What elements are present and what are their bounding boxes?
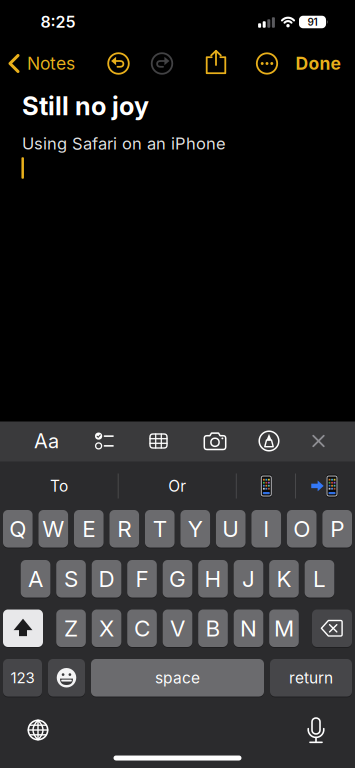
button[interactable]: Dictation bbox=[307, 717, 324, 744]
staticText: Or bbox=[168, 477, 186, 495]
button[interactable]: Q bbox=[3, 510, 33, 548]
button[interactable]: Checklist bbox=[95, 432, 113, 449]
staticText: 8:25 bbox=[40, 12, 75, 32]
button[interactable]: U bbox=[216, 510, 245, 548]
button[interactable]: B bbox=[198, 609, 228, 648]
button[interactable]: Dismiss bbox=[312, 435, 325, 447]
button[interactable]: Markup bbox=[258, 430, 279, 451]
button[interactable]: P bbox=[322, 510, 352, 548]
button[interactable]: space bbox=[91, 659, 264, 697]
staticText: T bbox=[153, 515, 167, 542]
staticText: L bbox=[313, 565, 326, 592]
staticText: Notes bbox=[27, 53, 75, 74]
button[interactable]: W bbox=[38, 510, 68, 548]
staticText: B bbox=[205, 615, 220, 642]
staticText: K bbox=[276, 565, 291, 592]
staticText: Aa bbox=[34, 429, 59, 453]
button[interactable]: Redo bbox=[151, 52, 173, 74]
button[interactable]: Undo bbox=[107, 52, 129, 74]
button[interactable]: Share bbox=[205, 50, 226, 74]
button[interactable]: 123 bbox=[3, 659, 42, 697]
button[interactable]: S bbox=[56, 560, 86, 598]
staticText: U bbox=[222, 515, 239, 542]
staticText: G bbox=[169, 565, 186, 592]
staticText: 123 bbox=[10, 669, 34, 687]
button[interactable]: V bbox=[163, 609, 192, 648]
button[interactable]: Back bbox=[8, 48, 75, 78]
staticText: P bbox=[330, 515, 344, 542]
staticText: O bbox=[293, 515, 310, 542]
button[interactable]: M bbox=[269, 609, 299, 648]
button[interactable]: I bbox=[251, 510, 281, 548]
staticText: M bbox=[274, 615, 294, 642]
staticText: V bbox=[170, 615, 185, 642]
button[interactable]: Insert screenshot bbox=[261, 474, 272, 497]
staticText: W bbox=[42, 515, 64, 542]
staticText: X bbox=[99, 615, 114, 642]
staticText: Done bbox=[295, 53, 340, 74]
button[interactable]: Format bbox=[34, 429, 59, 453]
staticText: R bbox=[117, 515, 131, 542]
button[interactable]: Or bbox=[122, 469, 232, 503]
button[interactable]: A bbox=[21, 560, 50, 598]
staticText: return bbox=[289, 668, 333, 687]
staticText: E bbox=[82, 515, 95, 542]
staticText: S bbox=[64, 565, 78, 592]
staticText: A bbox=[28, 565, 43, 592]
button[interactable]: Next keyboard bbox=[27, 719, 48, 740]
button[interactable]: Shift bbox=[3, 609, 43, 648]
button[interactable]: Z bbox=[56, 609, 86, 648]
button[interactable]: F bbox=[127, 560, 157, 598]
button[interactable]: X bbox=[92, 609, 121, 648]
button[interactable]: J bbox=[234, 560, 263, 598]
staticText: D bbox=[98, 565, 114, 592]
button[interactable]: C bbox=[127, 609, 157, 648]
staticText: To bbox=[50, 477, 68, 495]
staticText: I bbox=[263, 515, 269, 542]
staticText: 91 bbox=[307, 16, 317, 28]
button[interactable]: return bbox=[270, 659, 352, 697]
button[interactable]: Camera bbox=[203, 431, 226, 450]
button[interactable]: O bbox=[287, 510, 316, 548]
button[interactable]: E bbox=[74, 510, 104, 548]
button[interactable]: Table bbox=[149, 433, 168, 449]
button[interactable]: G bbox=[163, 560, 192, 598]
button[interactable]: T bbox=[145, 510, 175, 548]
button[interactable]: More bbox=[256, 52, 278, 74]
button[interactable]: L bbox=[305, 560, 334, 598]
staticText: Z bbox=[64, 615, 78, 642]
staticText: space bbox=[155, 668, 200, 687]
button[interactable]: D bbox=[92, 560, 121, 598]
button[interactable]: To bbox=[4, 469, 114, 503]
button[interactable]: Delete bbox=[312, 609, 352, 648]
staticText: Still no joy bbox=[22, 91, 149, 121]
button[interactable]: Emoji bbox=[48, 659, 85, 697]
staticText: F bbox=[135, 565, 148, 592]
staticText: Y bbox=[188, 515, 203, 542]
button[interactable]: Done bbox=[295, 53, 340, 74]
staticText: J bbox=[242, 565, 255, 592]
staticText: Using Safari on an iPhone bbox=[22, 133, 226, 153]
staticText: H bbox=[204, 565, 221, 592]
button[interactable]: Insert from iPhone bbox=[311, 474, 338, 497]
staticText: Q bbox=[9, 515, 26, 542]
button[interactable]: Y bbox=[180, 510, 210, 548]
button[interactable]: R bbox=[109, 510, 139, 548]
staticText: C bbox=[134, 615, 150, 642]
button[interactable]: N bbox=[234, 609, 263, 648]
button[interactable]: K bbox=[269, 560, 299, 598]
staticText: N bbox=[240, 615, 257, 642]
button[interactable]: H bbox=[198, 560, 228, 598]
